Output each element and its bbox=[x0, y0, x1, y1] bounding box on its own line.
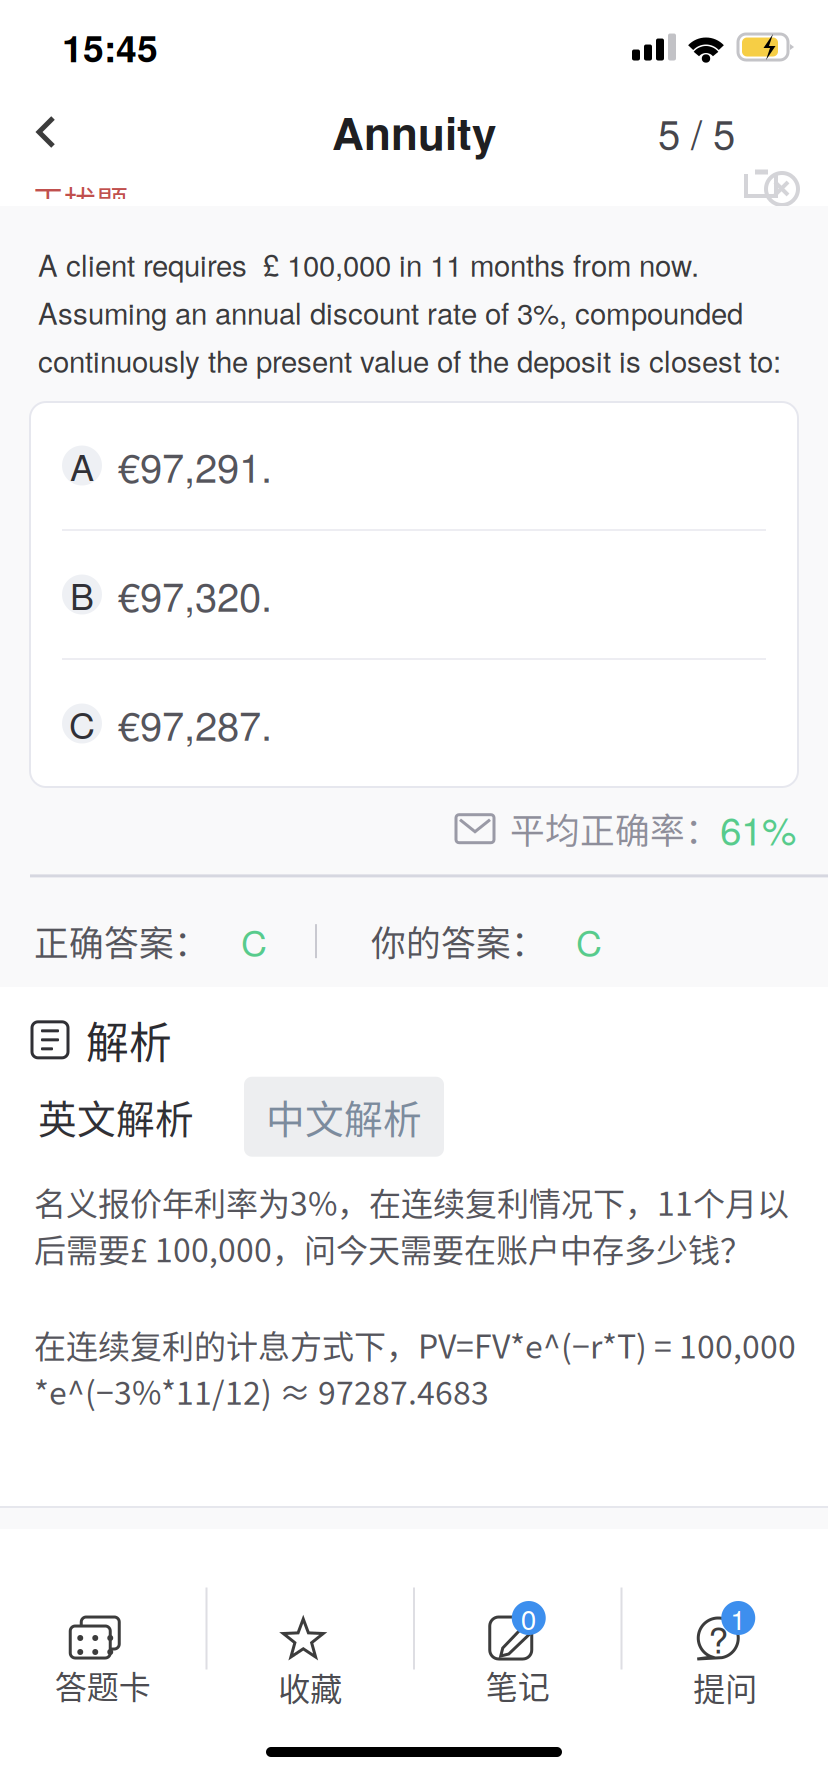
staticText: 名义报价年利率为3%，在连续复利情况下，11个月以后需要£ 100,000，问今… bbox=[34, 1179, 789, 1271]
button[interactable]: B bbox=[30, 531, 798, 658]
staticText: C bbox=[69, 698, 95, 749]
staticText: 平均正确率： bbox=[510, 804, 720, 854]
staticText: ? bbox=[708, 1612, 728, 1664]
button[interactable]: 答题卡 bbox=[0, 1529, 205, 1712]
staticText: 收藏 bbox=[278, 1664, 342, 1710]
button[interactable]: ? bbox=[622, 1529, 828, 1712]
staticText: 解析 bbox=[86, 1009, 172, 1071]
button[interactable]: 英文解析 bbox=[28, 1077, 204, 1157]
staticText: 笔记 bbox=[486, 1662, 550, 1708]
staticText: €97,291. bbox=[118, 437, 272, 494]
staticText: €97,320. bbox=[118, 566, 272, 623]
staticText: 15:45 bbox=[62, 20, 158, 74]
staticText: 在连续复利的计息方式下，PV=FV*e^(−r*T) = 100,000 *e^… bbox=[34, 1321, 796, 1414]
button[interactable]: A bbox=[30, 402, 798, 529]
staticText: 正确答案： bbox=[34, 916, 209, 966]
staticText: 提问 bbox=[693, 1664, 757, 1710]
button[interactable]: 0 bbox=[415, 1529, 620, 1712]
staticText: 0 bbox=[521, 1598, 537, 1638]
staticText: Annuity bbox=[332, 100, 496, 163]
staticText: 英文解析 bbox=[38, 1089, 194, 1145]
button[interactable]: 5 / 5 bbox=[638, 81, 755, 183]
staticText: C bbox=[241, 915, 267, 967]
button[interactable]: 收藏 bbox=[207, 1529, 413, 1712]
button[interactable]: Remove from wrong set bbox=[744, 170, 802, 206]
staticText: 5 / 5 bbox=[658, 103, 735, 161]
staticText: €97,287. bbox=[118, 695, 272, 752]
staticText: A bbox=[70, 440, 94, 491]
staticText: 中文解析 bbox=[266, 1089, 422, 1145]
staticText: B bbox=[70, 569, 94, 620]
staticText: 干扰题 bbox=[32, 177, 128, 223]
button[interactable]: 中文解析 bbox=[244, 1077, 444, 1157]
staticText: 答题卡 bbox=[55, 1662, 151, 1708]
staticText: C bbox=[576, 915, 602, 967]
staticText: A client requires £ 100,000 in 11 months… bbox=[38, 243, 781, 381]
staticText: 你的答案： bbox=[371, 916, 546, 966]
button[interactable]: C bbox=[30, 660, 798, 787]
button[interactable]: Back bbox=[0, 94, 80, 170]
staticText: 61% bbox=[720, 801, 796, 856]
staticText: 1 bbox=[730, 1598, 746, 1638]
